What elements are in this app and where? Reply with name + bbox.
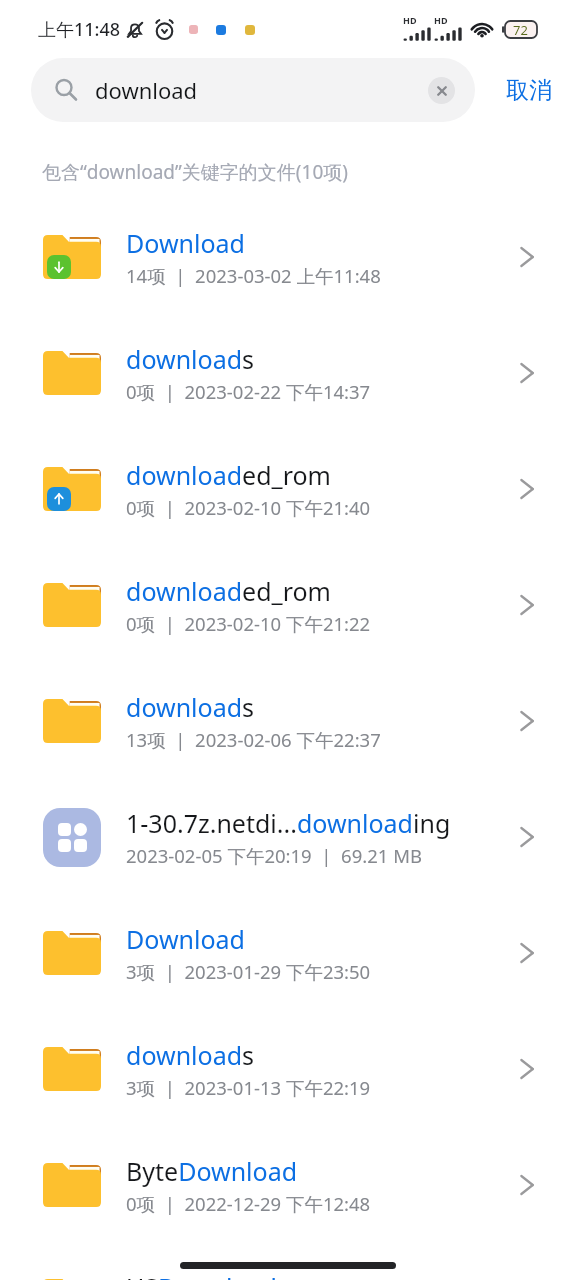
staticText: downloaded_rom [126,458,331,492]
staticText: 13项 | 2023-02-06 下午22:37 [126,727,381,752]
other: Open [520,594,537,616]
other: Open [520,1058,537,1080]
other: Open [520,710,537,732]
other: Open [520,478,537,500]
staticText: Download [126,226,245,260]
staticText: downloads [126,690,255,724]
staticText: 0项 | 2023-02-10 下午21:40 [126,495,371,520]
staticText: 0项 | 2023-02-10 下午21:22 [126,611,371,636]
staticText: 0项 | 2022-12-29 下午12:48 [126,1191,371,1216]
staticText: downloaded_rom [126,574,331,608]
staticText: 3项 | 2023-01-13 下午22:19 [126,1075,371,1100]
button[interactable]: downloads [0,315,576,431]
other: Open [520,246,537,268]
other: Open [520,362,537,384]
button[interactable]: downloaded_rom [0,431,576,547]
staticText: 0项 | 2023-02-22 下午14:37 [126,379,371,404]
staticText: 3项 | 2023-01-29 下午23:50 [126,959,371,984]
staticText: 2023-02-05 下午20:19 | 69.21 MB [126,843,423,868]
button[interactable]: USDownload [0,1243,576,1280]
other: Open [520,826,537,848]
staticText: 1-30.7z.netdi...downloading [126,806,451,840]
staticText: download [95,75,428,105]
button[interactable]: downloaded_rom [0,547,576,663]
button[interactable]: Download [0,895,576,1011]
staticText: downloads [126,342,255,376]
other: Open [520,1174,537,1196]
button[interactable]: ByteDownload [0,1127,576,1243]
staticText: USDownload [126,1270,277,1280]
staticText: downloads [126,1038,255,1072]
button[interactable]: Download [0,199,576,315]
staticText: 72 [513,21,528,38]
other: Open [520,942,537,964]
button[interactable]: download [31,58,475,122]
staticText: 包含“download”关键字的文件(10项) [42,159,348,185]
staticText: 上午11:48 [38,17,121,42]
staticText: ByteDownload [126,1154,298,1188]
button[interactable]: downloads [0,1011,576,1127]
staticText: 取消 [506,76,552,105]
staticText: HD [403,14,417,26]
staticText: HD [434,14,448,26]
staticText: 14项 | 2023-03-02 上午11:48 [126,263,381,288]
staticText: Download [126,922,245,956]
button[interactable]: 1-30.7z.netdi...downloading [0,779,576,895]
button[interactable]: Clear search [428,77,455,104]
button[interactable]: 取消 [473,58,576,122]
button[interactable]: downloads [0,663,576,779]
